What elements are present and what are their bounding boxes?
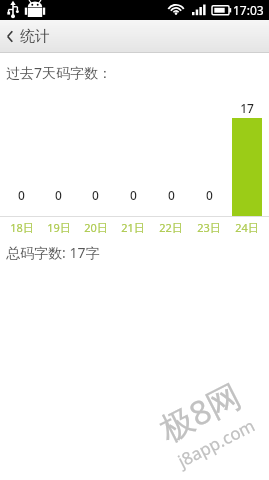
button[interactable]: 0	[3, 87, 40, 216]
staticText: 总码字数: 17字	[6, 243, 100, 262]
staticText: 17	[240, 100, 254, 116]
staticText: 18日	[10, 220, 34, 235]
staticText: 21日	[121, 220, 145, 235]
staticText: 22日	[159, 220, 183, 235]
staticText: 统计	[20, 27, 50, 46]
staticText: 极8网	[152, 372, 248, 451]
staticText: 24日	[235, 220, 259, 235]
staticText: 过去7天码字数：	[6, 63, 113, 82]
button[interactable]: 0	[114, 87, 152, 216]
staticText: j8app.com	[174, 413, 259, 472]
staticText: 0	[130, 187, 137, 203]
button[interactable]: Back	[0, 20, 58, 53]
button[interactable]: 0	[152, 87, 190, 216]
staticText: 19日	[47, 220, 71, 235]
staticText: 0	[168, 187, 175, 203]
staticText: 0	[206, 187, 213, 203]
button[interactable]: 0	[77, 87, 114, 216]
button[interactable]: 0	[40, 87, 77, 216]
button[interactable]: 17	[228, 87, 266, 216]
staticText: 0	[18, 187, 25, 203]
staticText: 17:03	[233, 2, 264, 18]
staticText: 0	[55, 187, 62, 203]
staticText: 20日	[84, 220, 108, 235]
button[interactable]: 0	[190, 87, 228, 216]
staticText: 0	[92, 187, 99, 203]
staticText: 23日	[197, 220, 221, 235]
